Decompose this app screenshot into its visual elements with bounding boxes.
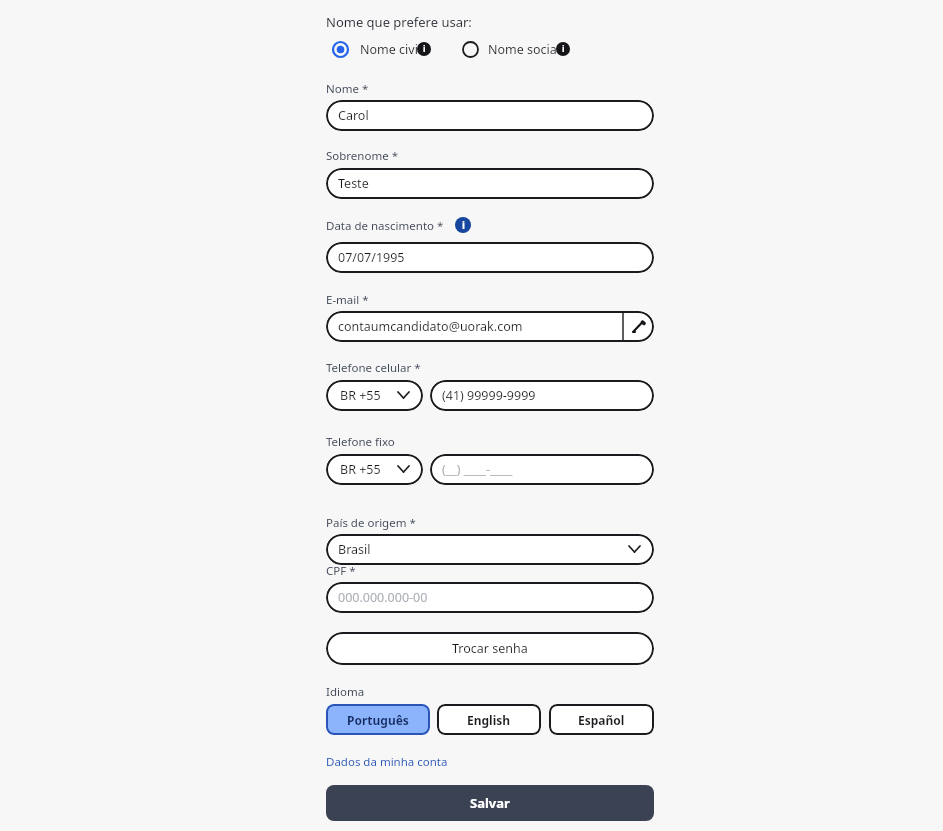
staticText: BR +55 — [340, 387, 381, 404]
button[interactable]: Salvar — [326, 785, 654, 821]
button[interactable]: Editar e-mail — [623, 311, 654, 342]
staticText: País de origem * — [326, 515, 416, 531]
button[interactable]: Nome civil — [332, 40, 436, 58]
button[interactable]: Selecionar país de origem — [326, 534, 654, 565]
button[interactable]: Mais informações — [556, 42, 570, 56]
button[interactable]: Español — [549, 704, 654, 735]
staticText: E-mail * — [326, 292, 369, 308]
button[interactable]: Dados da minha conta — [326, 754, 448, 770]
staticText: 07/07/1995 — [338, 249, 405, 266]
staticText: i — [462, 218, 465, 232]
staticText: BR +55 — [340, 461, 381, 478]
staticText: Sobrenome * — [326, 148, 398, 164]
staticText: (41) 99999-9999 — [442, 387, 536, 404]
button[interactable]: (41) 99999-9999 — [430, 380, 654, 411]
staticText: Data de nascimento * — [326, 218, 444, 234]
staticText: Teste — [338, 175, 369, 192]
button[interactable]: 07/07/1995 — [326, 242, 654, 273]
button[interactable]: Carol — [326, 100, 654, 131]
staticText: Brasil — [338, 541, 371, 558]
button[interactable]: Mais informações — [417, 42, 431, 56]
staticText: Nome * — [326, 81, 369, 97]
staticText: Telefone fixo — [326, 434, 395, 450]
staticText: Idioma — [326, 684, 365, 700]
staticText: Nome social — [488, 41, 561, 58]
staticText: Nome que prefere usar: — [326, 13, 472, 31]
button[interactable]: Trocar senha — [326, 632, 654, 665]
button[interactable]: Selecionar código do país — [326, 454, 423, 485]
staticText: Português — [347, 712, 409, 728]
staticText: Salvar — [470, 794, 510, 812]
staticText: English — [467, 712, 511, 728]
staticText: i — [423, 43, 426, 55]
staticText: i — [562, 43, 565, 55]
button[interactable]: Selecionar código do país — [326, 380, 423, 411]
staticText: CPF * — [326, 563, 356, 579]
staticText: Español — [578, 712, 625, 728]
button[interactable]: Nome social — [462, 40, 572, 58]
button[interactable]: 000.000.000-00 — [326, 582, 654, 613]
button[interactable]: (__) ____-____ — [430, 454, 654, 485]
staticText: Nome civil — [360, 41, 422, 58]
staticText: (__) ____-____ — [442, 461, 513, 478]
button[interactable]: Mais informações — [455, 217, 471, 233]
staticText: Telefone celular * — [326, 360, 421, 376]
button[interactable]: contaumcandidato@uorak.com — [338, 318, 523, 335]
staticText: Carol — [338, 107, 369, 124]
staticText: 000.000.000-00 — [338, 589, 428, 606]
button[interactable]: Teste — [326, 168, 654, 199]
button[interactable]: Português — [326, 704, 430, 735]
button[interactable]: English — [437, 704, 541, 735]
staticText: Trocar senha — [452, 640, 528, 657]
